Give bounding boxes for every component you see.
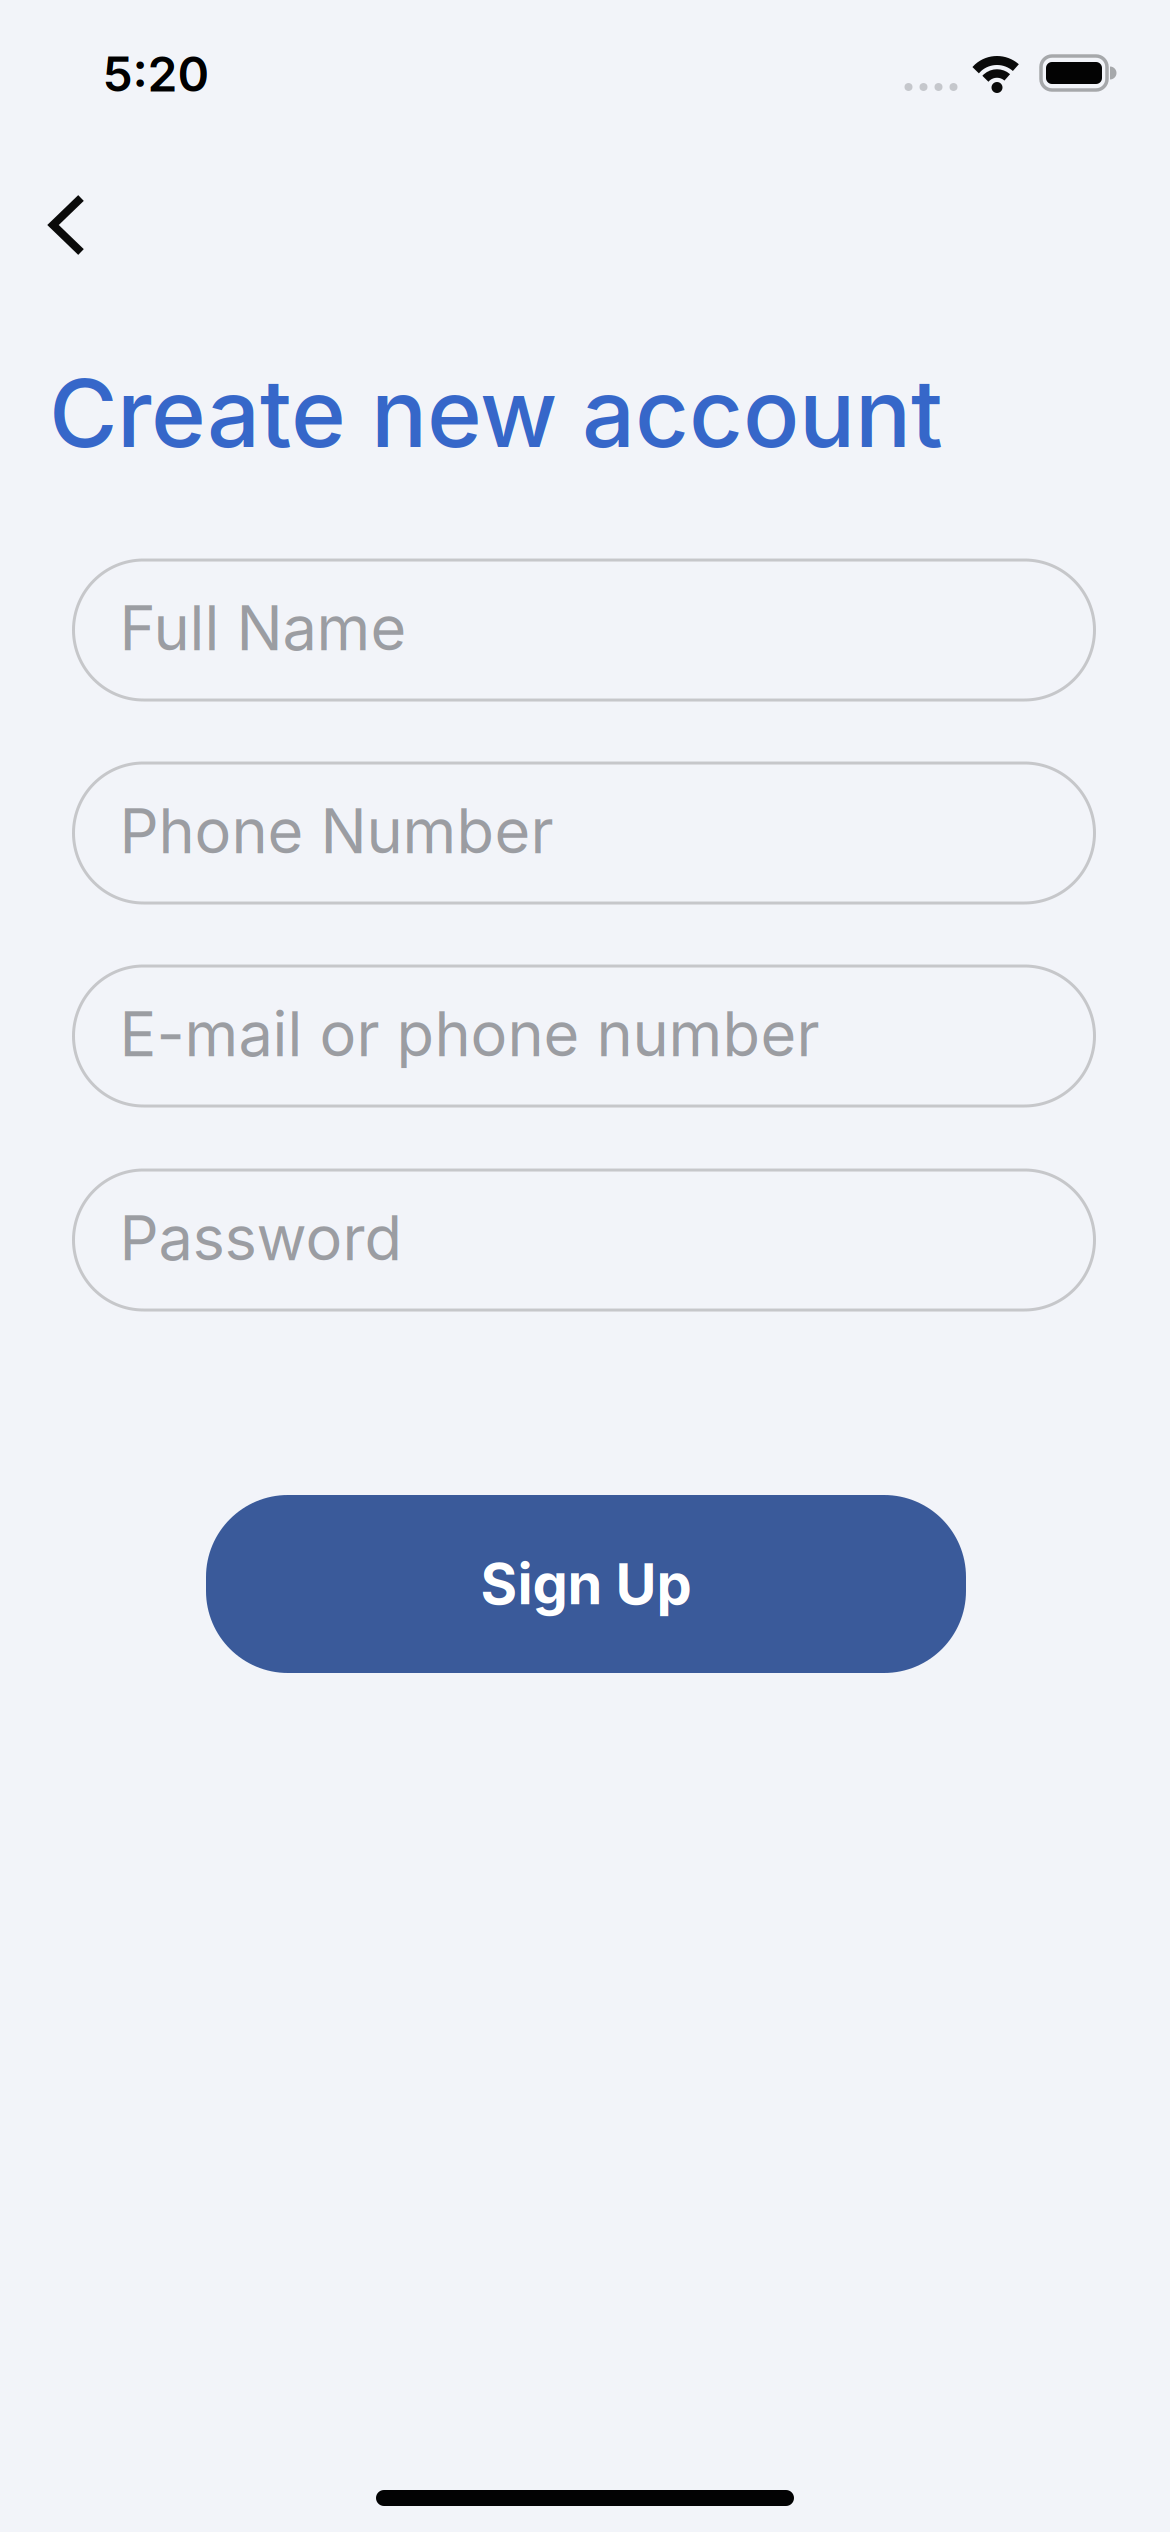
- button[interactable]: Full Name: [73, 560, 1094, 700]
- button[interactable]: [49, 195, 85, 255]
- button[interactable]: Password: [73, 1170, 1094, 1310]
- button[interactable]: Phone Number: [73, 763, 1094, 903]
- button[interactable]: Sign Up: [206, 1495, 966, 1673]
- staticText: E-mail or phone number: [119, 997, 819, 1071]
- staticText: Full Name: [119, 591, 406, 665]
- staticText: Password: [119, 1201, 402, 1275]
- staticText: Create new account: [49, 356, 943, 469]
- button[interactable]: E-mail or phone number: [73, 966, 1094, 1106]
- staticText: Sign Up: [480, 1550, 691, 1618]
- staticText: Phone Number: [119, 794, 553, 868]
- staticText: 5:20: [102, 45, 209, 103]
